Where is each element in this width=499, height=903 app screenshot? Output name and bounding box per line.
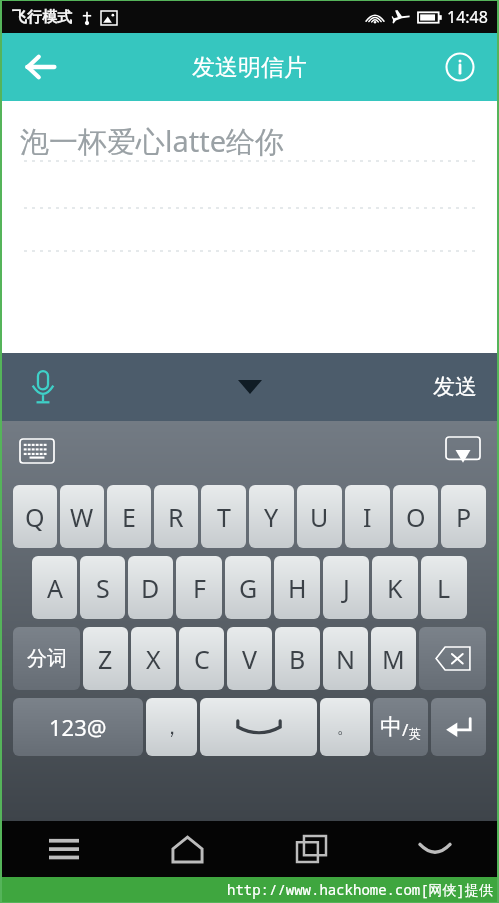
button[interactable]: Chinese English toggle [373, 698, 428, 756]
button[interactable]: S [80, 556, 125, 619]
staticText: G [239, 571, 258, 605]
button[interactable]: D [128, 556, 173, 619]
button[interactable]: A [32, 556, 77, 619]
button[interactable]: H [274, 556, 320, 619]
staticText: C [194, 642, 210, 676]
button[interactable]: Switch input method [16, 430, 58, 472]
staticText: B [289, 642, 306, 676]
button[interactable]: J [323, 556, 369, 619]
button[interactable]: F [176, 556, 222, 619]
button[interactable]: U [297, 485, 342, 548]
button[interactable]: N [323, 627, 368, 690]
button[interactable]: Enter [431, 698, 486, 756]
staticText: S [96, 571, 110, 605]
button[interactable]: 发送 [425, 365, 485, 409]
staticText: ， [162, 715, 182, 740]
button[interactable]: Menu [2, 821, 125, 877]
button[interactable]: X [131, 627, 176, 690]
button[interactable]: Collapse panel [223, 360, 277, 414]
button[interactable]: L [421, 556, 467, 619]
staticText: J [343, 571, 350, 605]
button[interactable]: P [441, 485, 486, 548]
button[interactable]: Space [200, 698, 317, 756]
button[interactable]: O [393, 485, 438, 548]
staticText: X [146, 642, 161, 676]
button[interactable]: Info [435, 42, 485, 92]
button[interactable]: Y [249, 485, 294, 548]
staticText: P [456, 500, 472, 534]
button[interactable]: Q [13, 485, 57, 548]
staticText: Y [264, 500, 279, 534]
button[interactable]: Z [83, 627, 128, 690]
staticText: 。 [337, 717, 354, 738]
staticText: A [47, 571, 63, 605]
button[interactable]: Back [14, 41, 66, 93]
staticText: H [288, 571, 307, 605]
button[interactable]: 123@ [13, 698, 143, 756]
button[interactable]: 分词 [13, 627, 80, 690]
staticText: L [437, 571, 451, 605]
staticText: I [363, 500, 372, 534]
button[interactable]: T [201, 485, 246, 548]
staticText: 分词 [27, 646, 67, 671]
staticText: W [70, 500, 94, 534]
staticText: E [122, 500, 136, 534]
button[interactable]: Voice input [16, 360, 70, 414]
button[interactable]: I [345, 485, 390, 548]
staticText: 发送 [433, 373, 477, 401]
staticText: N [336, 642, 356, 676]
button[interactable]: 。 [320, 698, 370, 756]
button[interactable]: E [107, 485, 151, 548]
button[interactable]: R [154, 485, 198, 548]
staticText: D [141, 571, 160, 605]
button[interactable]: Hide keyboard [441, 429, 485, 473]
staticText: M [382, 642, 405, 676]
staticText: Q [25, 500, 45, 534]
staticText: 泡一杯爱心latte给你 [20, 121, 285, 161]
button[interactable]: 泡一杯爱心latte给你 [2, 101, 497, 353]
button[interactable]: V [227, 627, 272, 690]
staticText: 英 [409, 726, 421, 741]
staticText: O [406, 500, 426, 534]
button[interactable]: W [60, 485, 104, 548]
staticText: 123@ [49, 712, 107, 742]
staticText: U [310, 500, 329, 534]
staticText: http://www.hackhome.com[网侠]提供 [227, 880, 493, 899]
staticText: Z [98, 642, 113, 676]
staticText: F [193, 571, 206, 605]
staticText: / [402, 718, 409, 741]
staticText: 14:48 [447, 6, 488, 28]
button[interactable]: B [275, 627, 320, 690]
button[interactable]: Hide navigation [373, 821, 497, 877]
button[interactable]: C [179, 627, 224, 690]
staticText: 中 [380, 713, 402, 741]
button[interactable]: ， [146, 698, 197, 756]
button[interactable]: M [371, 627, 416, 690]
button[interactable]: Home [125, 821, 249, 877]
staticText: 飞行模式 [12, 8, 72, 27]
staticText: R [168, 500, 184, 534]
button[interactable]: G [225, 556, 271, 619]
button[interactable]: Backspace [419, 627, 486, 690]
staticText: K [387, 571, 403, 605]
button[interactable]: K [372, 556, 418, 619]
button[interactable]: Recent apps [249, 821, 373, 877]
staticText: T [217, 500, 231, 534]
staticText: V [242, 642, 258, 676]
staticText: 发送明信片 [192, 53, 307, 82]
